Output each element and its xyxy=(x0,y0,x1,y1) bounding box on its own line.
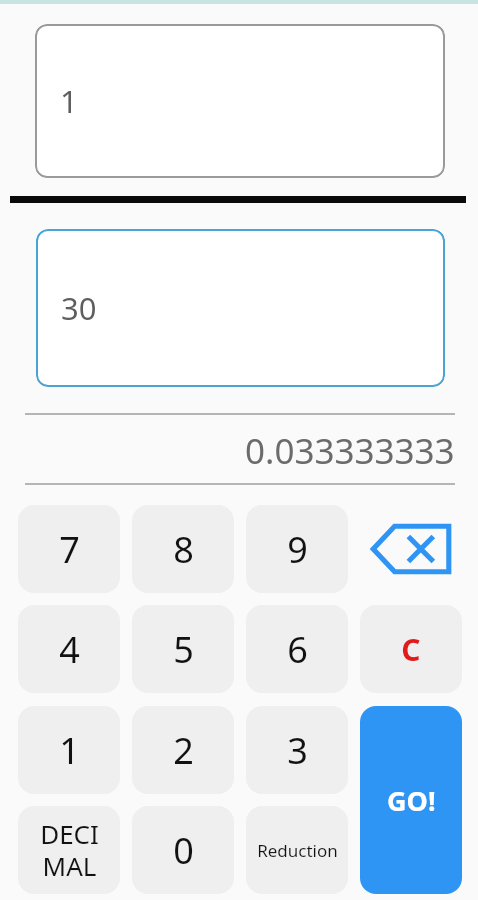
staticText: 4 xyxy=(59,625,80,674)
staticText: GO! xyxy=(387,782,436,819)
staticText: 2 xyxy=(173,726,194,775)
staticText: C xyxy=(401,629,421,670)
staticText: 0.033333333 xyxy=(245,427,455,475)
button[interactable]: 2 xyxy=(132,706,234,794)
staticText: 1 xyxy=(59,726,80,775)
button[interactable]: Reduction xyxy=(246,806,348,894)
staticText: 3 xyxy=(287,726,308,775)
staticText: 6 xyxy=(287,625,308,674)
staticText: 1 xyxy=(60,80,78,122)
staticText: 30 xyxy=(61,287,97,329)
staticText: 9 xyxy=(287,525,308,574)
button[interactable]: 1 xyxy=(18,706,120,794)
staticText: 8 xyxy=(173,525,194,574)
button[interactable]: C xyxy=(360,605,462,693)
button[interactable]: 30 xyxy=(36,229,445,387)
staticText: Reduction xyxy=(257,839,338,862)
button[interactable]: 9 xyxy=(246,505,348,593)
staticText: DECI MAL xyxy=(40,816,99,884)
staticText: 0 xyxy=(173,826,194,875)
button[interactable]: DECI MAL xyxy=(18,806,120,894)
button[interactable]: 0 xyxy=(132,806,234,894)
button[interactable]: GO! xyxy=(360,706,462,894)
button[interactable]: 5 xyxy=(132,605,234,693)
staticText: 7 xyxy=(59,525,80,574)
button[interactable]: 3 xyxy=(246,706,348,794)
button[interactable]: 4 xyxy=(18,605,120,693)
staticText: 5 xyxy=(173,625,194,674)
button[interactable]: 8 xyxy=(132,505,234,593)
button[interactable]: 7 xyxy=(18,505,120,593)
button[interactable]: Backspace xyxy=(360,505,462,593)
button[interactable]: 1 xyxy=(35,24,445,178)
button[interactable]: 6 xyxy=(246,605,348,693)
